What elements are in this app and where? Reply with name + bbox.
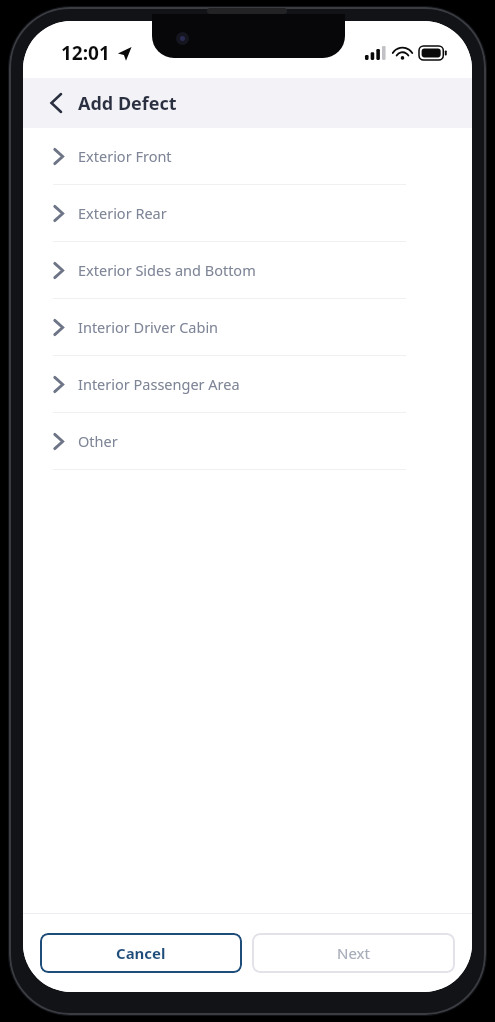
staticText: Interior Driver Cabin xyxy=(78,317,219,337)
staticText: Exterior Front xyxy=(78,146,172,166)
staticText: Other xyxy=(78,431,118,451)
button[interactable]: Other xyxy=(23,413,472,469)
staticText: Interior Passenger Area xyxy=(78,374,240,394)
staticText: 12:01 xyxy=(61,40,110,66)
staticText: Exterior Sides and Bottom xyxy=(78,260,256,280)
button[interactable]: Exterior Rear xyxy=(23,185,472,241)
button[interactable]: Cancel xyxy=(40,933,242,973)
button[interactable]: Interior Passenger Area xyxy=(23,356,472,412)
staticText: Cancel xyxy=(116,943,166,963)
button[interactable]: Interior Driver Cabin xyxy=(23,299,472,355)
button[interactable]: Next xyxy=(252,933,455,973)
staticText: Add Defect xyxy=(78,91,177,116)
staticText: Next xyxy=(337,943,370,963)
staticText: Exterior Rear xyxy=(78,203,167,223)
button[interactable]: Exterior Sides and Bottom xyxy=(23,242,472,298)
button[interactable]: Exterior Front xyxy=(23,128,472,184)
button[interactable]: Back xyxy=(41,88,71,118)
